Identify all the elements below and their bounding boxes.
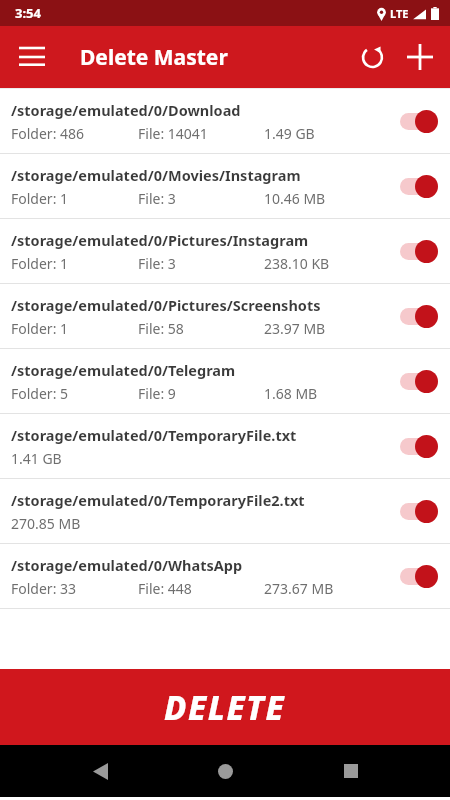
button[interactable]: /storage/emulated/0/WhatsApp (0, 544, 450, 608)
staticText: Folder: 33 (11, 579, 77, 598)
button[interactable]: Toggle selection for /storage/emulated/0… (388, 349, 450, 413)
button[interactable]: Refresh (348, 33, 396, 81)
button[interactable]: Toggle selection for /storage/emulated/0… (388, 284, 450, 348)
staticText: /storage/emulated/0/TemporaryFile.txt (11, 425, 297, 445)
staticText: DELETE (164, 685, 286, 730)
button[interactable]: Recent apps (325, 745, 377, 797)
button[interactable]: Toggle selection for /storage/emulated/0… (388, 479, 450, 543)
staticText: File: 9 (138, 384, 176, 403)
staticText: Folder: 1 (11, 319, 69, 338)
staticText: /storage/emulated/0/Pictures/Instagram (11, 230, 309, 250)
staticText: Folder: 5 (11, 384, 69, 403)
button[interactable]: Toggle selection for /storage/emulated/0… (388, 219, 450, 283)
button[interactable]: /storage/emulated/0/TemporaryFile2.txt (0, 479, 450, 543)
staticText: /storage/emulated/0/Telegram (11, 360, 236, 380)
staticText: File: 58 (138, 319, 184, 338)
button[interactable]: /storage/emulated/0/Pictures/Instagram (0, 219, 450, 283)
staticText: Folder: 1 (11, 189, 69, 208)
staticText: 23.97 MB (264, 319, 326, 338)
staticText: 238.10 KB (264, 254, 330, 273)
staticText: Delete Master (80, 43, 228, 72)
staticText: Folder: 486 (11, 124, 85, 143)
button[interactable]: DELETE (0, 669, 450, 745)
staticText: /storage/emulated/0/WhatsApp (11, 555, 243, 575)
staticText: File: 3 (138, 189, 176, 208)
staticText: /storage/emulated/0/Download (11, 100, 241, 120)
staticText: File: 14041 (138, 124, 208, 143)
button[interactable]: /storage/emulated/0/Movies/Instagram (0, 154, 450, 218)
staticText: LTE (390, 6, 409, 21)
staticText: 10.46 MB (264, 189, 326, 208)
staticText: 3:54 (15, 4, 41, 22)
button[interactable]: Toggle selection for /storage/emulated/0… (388, 544, 450, 608)
button[interactable]: Back (74, 745, 126, 797)
staticText: 1.41 GB (11, 449, 62, 468)
button[interactable]: Toggle selection for /storage/emulated/0… (388, 154, 450, 218)
staticText: /storage/emulated/0/Movies/Instagram (11, 165, 301, 185)
button[interactable]: /storage/emulated/0/Pictures/Screenshots (0, 284, 450, 348)
staticText: 1.49 GB (264, 124, 315, 143)
staticText: 270.85 MB (11, 514, 81, 533)
staticText: /storage/emulated/0/TemporaryFile2.txt (11, 490, 305, 510)
button[interactable]: Home (199, 745, 251, 797)
button[interactable]: Open navigation menu (8, 33, 56, 81)
staticText: /storage/emulated/0/Pictures/Screenshots (11, 295, 321, 315)
button[interactable]: Toggle selection for /storage/emulated/0… (388, 414, 450, 478)
button[interactable]: /storage/emulated/0/Telegram (0, 349, 450, 413)
button[interactable]: /storage/emulated/0/TemporaryFile.txt (0, 414, 450, 478)
button[interactable]: Toggle selection for /storage/emulated/0… (388, 89, 450, 153)
staticText: File: 3 (138, 254, 176, 273)
button[interactable]: Add folder (396, 33, 444, 81)
staticText: 273.67 MB (264, 579, 334, 598)
staticText: 1.68 MB (264, 384, 318, 403)
staticText: Folder: 1 (11, 254, 69, 273)
button[interactable]: /storage/emulated/0/Download (0, 89, 450, 153)
staticText: File: 448 (138, 579, 192, 598)
